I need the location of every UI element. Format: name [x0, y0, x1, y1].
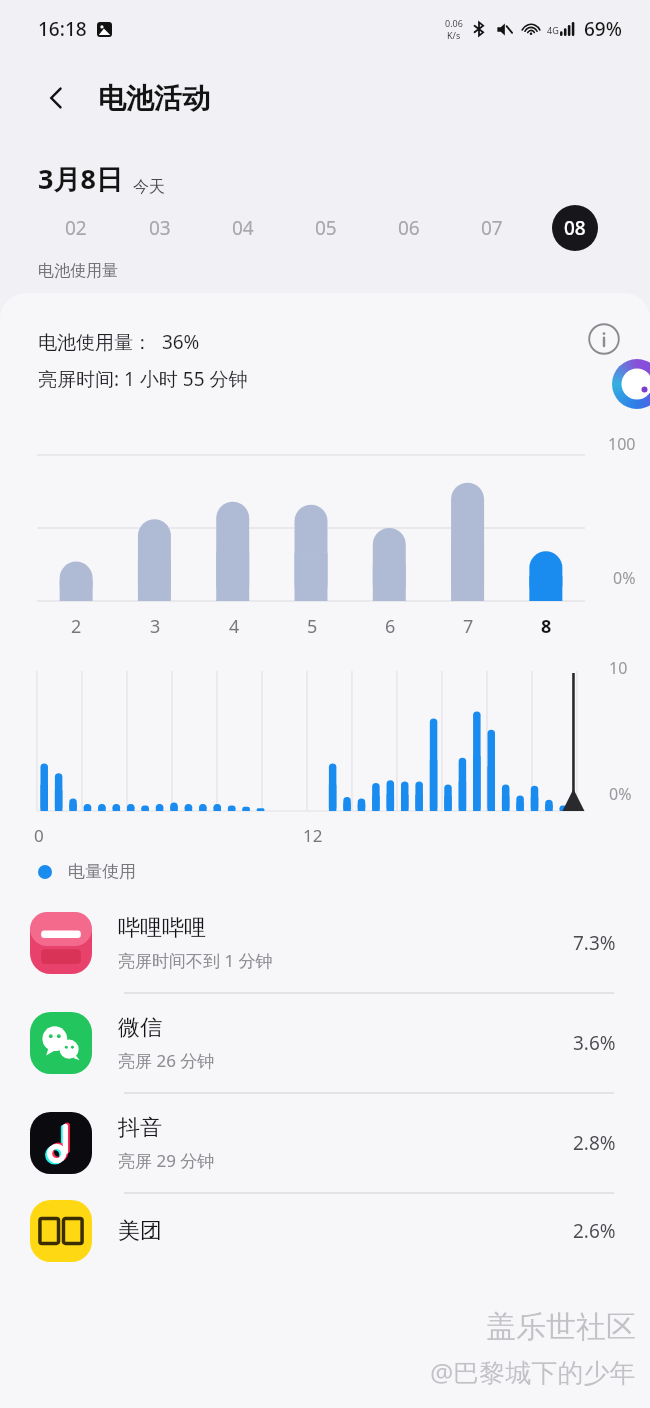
- staticText: 亮屏时间不到 1 分钟: [118, 949, 273, 972]
- button[interactable]: 抖音: [0, 1094, 650, 1194]
- staticText: 03: [149, 215, 171, 241]
- button[interactable]: 02: [34, 200, 118, 256]
- staticText: 05: [315, 215, 337, 241]
- staticText: 盖乐世社区: [486, 1308, 636, 1346]
- button[interactable]: 06: [367, 200, 450, 256]
- staticText: 3月8日: [38, 160, 123, 197]
- staticText: @巴黎城下的少年: [430, 1354, 636, 1390]
- staticText: 今天: [133, 177, 165, 197]
- staticText: 7.3%: [573, 930, 616, 956]
- staticText: 哔哩哔哩: [118, 914, 206, 942]
- button[interactable]: 05: [284, 200, 367, 256]
- button[interactable]: 美团: [0, 1194, 650, 1268]
- staticText: 7: [463, 614, 474, 639]
- staticText: 电池使用量： 36%: [38, 329, 200, 355]
- button[interactable]: 微信: [0, 994, 650, 1094]
- staticText: 亮屏 26 分钟: [118, 1049, 215, 1072]
- staticText: 06: [398, 215, 420, 241]
- staticText: 美团: [118, 1217, 162, 1245]
- staticText: 0%: [613, 567, 636, 589]
- button[interactable]: 08: [533, 200, 616, 256]
- staticText: 3: [150, 614, 161, 639]
- staticText: 12: [303, 824, 323, 847]
- staticText: 亮屏 29 分钟: [118, 1149, 215, 1172]
- staticText: 6: [385, 614, 396, 639]
- staticText: 02: [65, 215, 87, 241]
- staticText: 69%: [584, 16, 622, 42]
- staticText: 4: [229, 614, 240, 639]
- staticText: 5: [307, 614, 318, 639]
- staticText: 电池活动: [98, 81, 210, 116]
- button[interactable]: 07: [450, 200, 533, 256]
- button[interactable]: 04: [201, 200, 284, 256]
- staticText: 0%: [609, 783, 632, 805]
- button[interactable]: 哔哩哔哩: [0, 894, 650, 994]
- staticText: 电量使用: [68, 861, 136, 882]
- staticText: 0: [34, 824, 44, 847]
- staticText: 8: [541, 614, 552, 639]
- staticText: 10: [609, 657, 628, 679]
- staticText: 08: [564, 215, 586, 241]
- staticText: 100: [608, 433, 636, 455]
- staticText: 2.8%: [573, 1130, 616, 1156]
- staticText: K/s: [447, 29, 461, 41]
- staticText: 2.6%: [573, 1218, 616, 1244]
- staticText: 3.6%: [573, 1030, 616, 1056]
- staticText: 2: [71, 614, 82, 639]
- button[interactable]: 03: [118, 200, 201, 256]
- staticText: 电池使用量: [38, 261, 118, 281]
- button[interactable]: 信息: [584, 319, 624, 359]
- staticText: 0.06: [445, 17, 463, 29]
- staticText: 04: [232, 215, 254, 241]
- staticText: 16:18: [38, 16, 87, 42]
- button[interactable]: 返回: [34, 75, 80, 121]
- staticText: 微信: [118, 1014, 162, 1042]
- staticText: 亮屏时间: 1 小时 55 分钟: [38, 366, 248, 392]
- staticText: 07: [481, 215, 503, 241]
- staticText: 4G: [547, 24, 559, 36]
- staticText: 抖音: [118, 1114, 162, 1142]
